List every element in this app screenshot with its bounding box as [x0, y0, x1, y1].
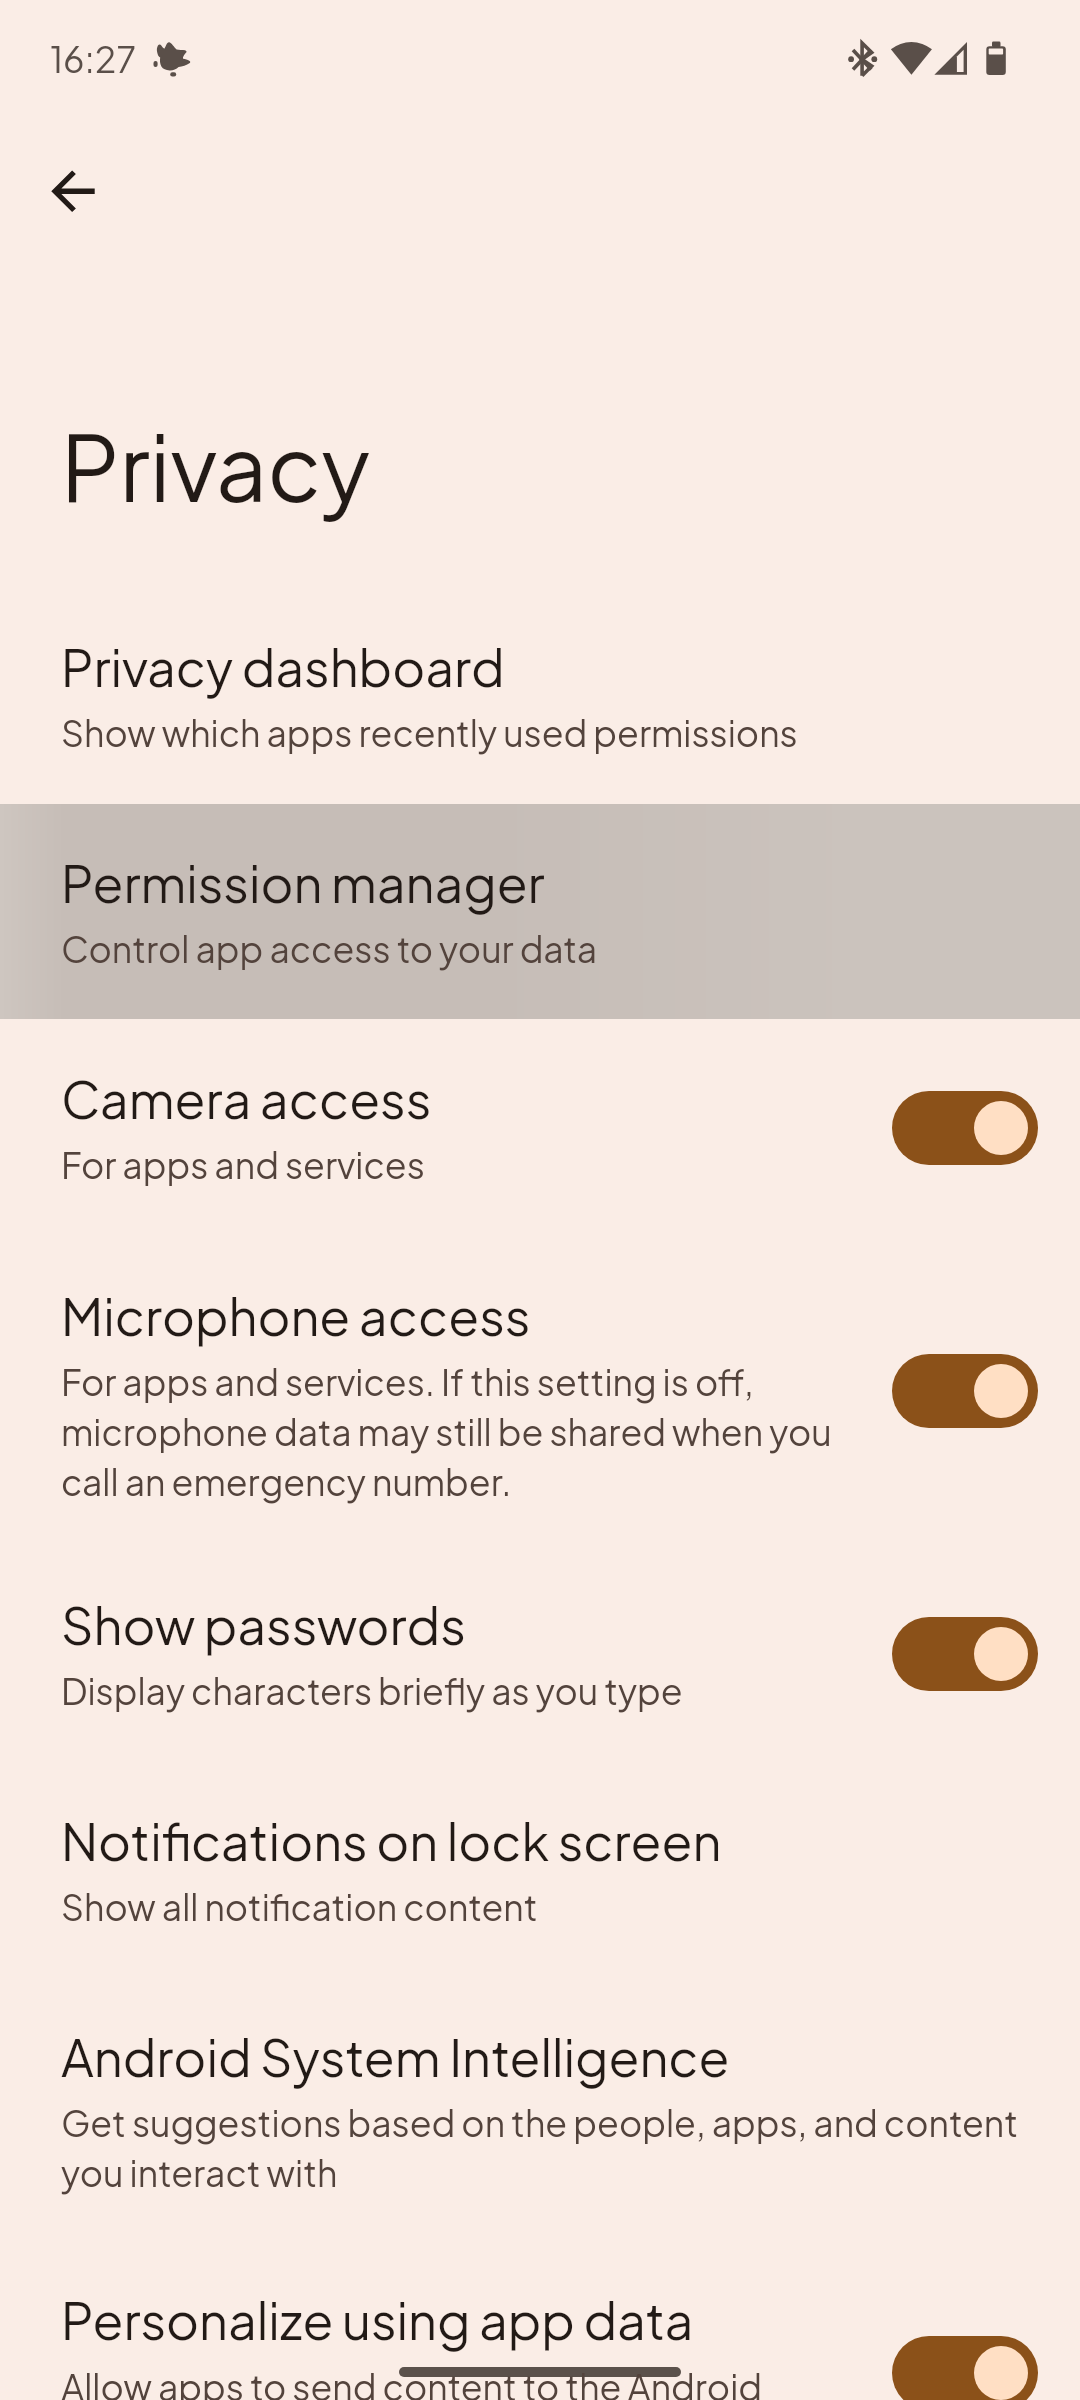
- button[interactable]: Camera access: [0, 1019, 1080, 1235]
- staticText: Show which apps recently used permission…: [61, 706, 798, 756]
- button[interactable]: Notifications on lock screen: [0, 1764, 1080, 1979]
- staticText: 16:27: [50, 36, 136, 81]
- staticText: Permission manager: [61, 851, 545, 915]
- staticText: Camera access: [61, 1067, 432, 1131]
- staticText: Show all notification content: [61, 1880, 538, 1930]
- button[interactable]: Navigate up: [30, 148, 118, 236]
- staticText: Personalize using app data: [61, 2288, 694, 2352]
- staticText: Privacy dashboard: [61, 635, 505, 699]
- button[interactable]: Show passwords: [892, 1617, 1038, 1691]
- button[interactable]: Personalize using app data: [892, 2336, 1038, 2400]
- staticText: Show passwords: [61, 1593, 466, 1657]
- staticText: Allow apps to send content to the Androi…: [61, 2360, 763, 2400]
- staticText: Display characters briefly as you type: [61, 1664, 683, 1714]
- staticText: Privacy: [61, 408, 371, 522]
- button[interactable]: Personalize using app data: [0, 2243, 1080, 2400]
- staticText: Microphone access: [61, 1284, 531, 1348]
- staticText: Notifications on lock screen: [61, 1809, 722, 1873]
- button[interactable]: Privacy dashboard: [0, 589, 1080, 804]
- button[interactable]: Android System Intelligence: [0, 1979, 1080, 2243]
- button[interactable]: Permission manager: [0, 804, 1080, 1019]
- button[interactable]: Camera access: [892, 1091, 1038, 1165]
- button[interactable]: Show passwords: [0, 1549, 1080, 1764]
- button[interactable]: Microphone access: [0, 1235, 1080, 1549]
- staticText: For apps and services. If this setting i…: [61, 1355, 832, 1505]
- staticText: Get suggestions based on the people, app…: [61, 2096, 1019, 2196]
- staticText: Android System Intelligence: [61, 2025, 730, 2089]
- staticText: For apps and services: [61, 1138, 425, 1188]
- staticText: Control app access to your data: [61, 922, 598, 972]
- button[interactable]: Microphone access: [892, 1354, 1038, 1428]
